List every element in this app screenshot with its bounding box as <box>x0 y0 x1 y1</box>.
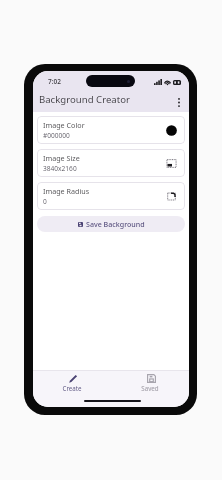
staticText: Image Size <box>43 153 80 163</box>
button[interactable]: Saved <box>111 371 189 394</box>
button[interactable]: Save Background <box>37 216 185 232</box>
button[interactable]: Image Color <box>37 116 185 144</box>
staticText: Saved <box>141 384 159 392</box>
staticText: Save Background <box>86 219 145 229</box>
button[interactable]: Image Radius <box>37 182 185 210</box>
staticText: 0 <box>43 197 47 206</box>
staticText: #000000 <box>43 131 70 140</box>
staticText: Image Radius <box>43 186 90 196</box>
staticText: Image Color <box>43 120 85 130</box>
staticText: Create <box>62 384 82 392</box>
staticText: 7:02 <box>48 77 61 86</box>
staticText: 3840x2160 <box>43 164 77 173</box>
button[interactable]: Image Size <box>37 149 185 177</box>
button[interactable]: Create <box>33 371 111 394</box>
staticText: Background Creator <box>39 93 130 106</box>
button[interactable]: More options <box>173 96 185 108</box>
